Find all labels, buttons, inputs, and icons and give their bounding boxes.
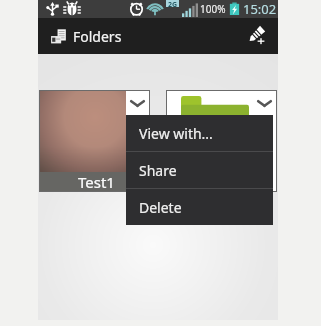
button[interactable]: Test1 bbox=[39, 90, 150, 192]
button[interactable]: Share bbox=[126, 152, 273, 188]
staticText: Share bbox=[139, 161, 177, 180]
button[interactable]: More options bbox=[253, 92, 275, 114]
button[interactable]: View with... bbox=[126, 115, 273, 151]
staticText: 15:02 bbox=[243, 0, 277, 18]
button[interactable]: Delete bbox=[126, 189, 273, 225]
staticText: View with... bbox=[139, 124, 213, 143]
button[interactable]: New note bbox=[238, 18, 278, 54]
button[interactable]: More options bbox=[126, 92, 148, 114]
button[interactable]: More options bbox=[166, 90, 277, 192]
staticText: 2G bbox=[168, 0, 178, 7]
staticText: Delete bbox=[139, 198, 182, 217]
staticText: 100% bbox=[200, 2, 226, 16]
staticText: Folders bbox=[73, 27, 122, 46]
staticText: Test1 bbox=[78, 172, 115, 192]
